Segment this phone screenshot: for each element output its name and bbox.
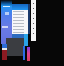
button[interactable] <box>13 28 29 31</box>
button[interactable] <box>13 22 29 25</box>
button[interactable] <box>13 19 29 22</box>
button[interactable] <box>13 16 29 19</box>
button[interactable] <box>13 25 29 28</box>
button[interactable] <box>13 31 29 34</box>
button[interactable] <box>13 13 29 16</box>
button[interactable] <box>13 10 29 13</box>
